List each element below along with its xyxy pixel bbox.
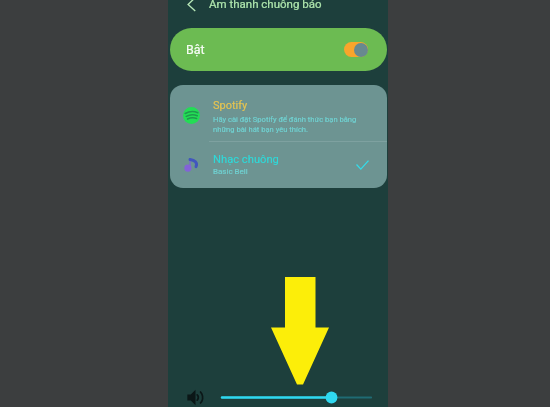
button[interactable]: Volume slider xyxy=(222,388,371,407)
staticText: Basic Bell xyxy=(213,167,248,176)
staticText: Âm thanh chuông báo xyxy=(209,0,322,10)
staticText: Nhạc chuông xyxy=(213,153,279,166)
staticText: Hãy cài đặt Spotify để đánh thức bạn bằn… xyxy=(213,115,357,133)
staticText: Bật xyxy=(186,42,205,57)
button[interactable]: Bật xyxy=(170,28,387,71)
button[interactable]: Selected xyxy=(352,155,372,175)
button[interactable]: Nhạc chuông xyxy=(170,142,387,188)
button[interactable]: Volume xyxy=(168,388,222,407)
staticText: Spotify xyxy=(213,99,248,112)
button[interactable]: Back xyxy=(176,0,206,19)
button[interactable]: Spotify xyxy=(170,85,387,141)
button[interactable]: Alarm sound on xyxy=(344,42,368,57)
